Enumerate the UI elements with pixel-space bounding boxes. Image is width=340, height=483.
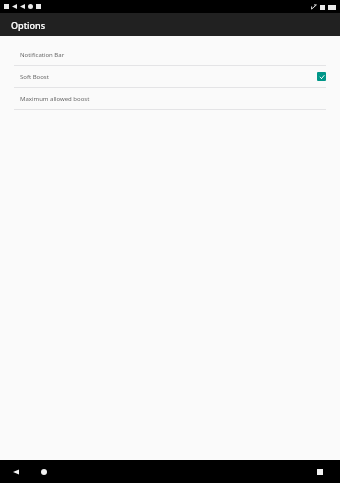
- button[interactable]: Back: [8, 464, 24, 480]
- button[interactable]: Maximum allowed boost: [0, 88, 340, 109]
- staticText: Options: [11, 19, 46, 31]
- button[interactable]: Soft Boost: [0, 66, 340, 87]
- button[interactable]: Notification Bar: [0, 44, 340, 65]
- staticText: Maximum allowed boost: [20, 95, 326, 103]
- button[interactable]: Home: [36, 464, 52, 480]
- staticText: Soft Boost: [20, 73, 317, 81]
- staticText: Notification Bar: [20, 51, 326, 59]
- button[interactable]: Recent apps: [312, 464, 328, 480]
- button[interactable]: Toggle option: [317, 72, 326, 81]
